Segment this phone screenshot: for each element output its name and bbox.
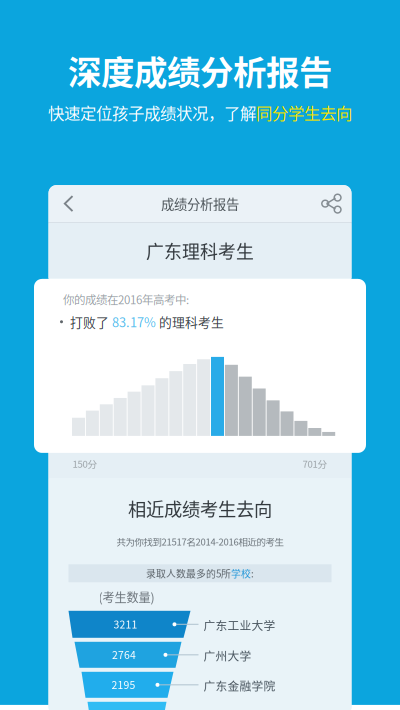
- staticText: 2764: [112, 647, 136, 662]
- staticText: 广东理科考生: [146, 238, 254, 264]
- staticText: 3211: [113, 616, 137, 631]
- staticText: 广东金融学院: [203, 677, 275, 694]
- staticText: 共为你找到21517名2014-2016相近的考生: [116, 535, 283, 548]
- staticText: :: [251, 566, 254, 580]
- staticText: 广东工业大学: [203, 616, 275, 633]
- staticText: (考生数量): [98, 588, 154, 606]
- staticText: 83.17%: [112, 312, 156, 331]
- staticText: 快速定位孩子成绩状况，了解: [48, 100, 256, 124]
- staticText: 深度成绩分析报告: [68, 46, 332, 94]
- staticText: 2195: [111, 677, 135, 692]
- staticText: 同分学生去向: [256, 100, 352, 124]
- staticText: 150分: [72, 457, 97, 471]
- staticText: 的理科考生: [156, 312, 224, 331]
- button[interactable]: Share: [311, 185, 351, 222]
- staticText: 广州大学: [203, 647, 251, 664]
- staticText: 录取人数最多的5所: [146, 566, 231, 580]
- button[interactable]: Back: [48, 185, 88, 222]
- staticText: 相近成绩考生去向: [128, 495, 272, 522]
- staticText: 成绩分析报告: [161, 194, 239, 213]
- staticText: 学校: [231, 566, 251, 580]
- staticText: 打败了: [70, 312, 112, 331]
- staticText: 你的成绩在2016年高考中:: [63, 291, 189, 307]
- staticText: 701分: [302, 457, 327, 471]
